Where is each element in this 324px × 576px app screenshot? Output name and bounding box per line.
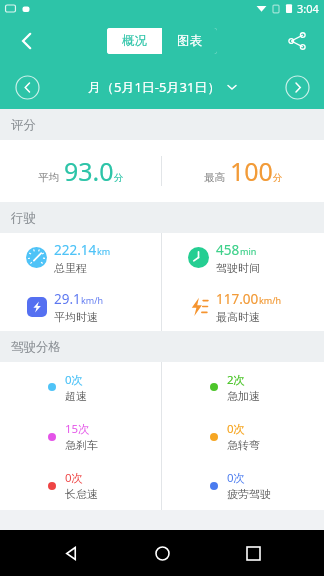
staticText: min: [240, 245, 257, 257]
button[interactable]: Previous: [14, 74, 40, 100]
button[interactable]: Next: [284, 74, 310, 100]
button[interactable]: 15次: [0, 412, 161, 461]
staticText: 3:04: [297, 1, 319, 16]
staticText: 分: [114, 172, 124, 184]
button[interactable]: 0次: [0, 461, 161, 510]
button[interactable]: 2次: [162, 362, 324, 412]
staticText: 117.00: [216, 290, 259, 308]
button[interactable]: 月（5月1日-5月31日）: [88, 78, 237, 96]
staticText: 平均: [38, 171, 59, 184]
staticText: 15次: [65, 421, 90, 437]
staticText: km/h: [81, 294, 104, 306]
staticText: 驾驶时间: [216, 261, 260, 275]
staticText: 超速: [65, 389, 87, 403]
staticText: 222.14: [54, 241, 97, 259]
staticText: 长怠速: [65, 487, 98, 501]
button[interactable]: 458: [162, 233, 324, 282]
button[interactable]: Recents: [233, 533, 273, 573]
button[interactable]: 0次: [162, 461, 324, 510]
staticText: 平均时速: [54, 310, 98, 324]
button[interactable]: Share: [278, 22, 316, 60]
staticText: 29.1: [54, 290, 81, 308]
button[interactable]: 222.14: [0, 233, 161, 282]
button[interactable]: Back: [51, 533, 91, 573]
button[interactable]: 117.00: [162, 282, 324, 331]
staticText: 0次: [227, 421, 246, 437]
staticText: 评分: [11, 117, 36, 133]
button[interactable]: 29.1: [0, 282, 161, 331]
button[interactable]: 概况: [107, 28, 162, 54]
staticText: km/h: [259, 294, 282, 306]
staticText: 疲劳驾驶: [227, 487, 271, 501]
staticText: 最高: [204, 171, 225, 184]
staticText: 月（5月1日-5月31日）: [88, 78, 221, 96]
staticText: 急加速: [227, 389, 260, 403]
staticText: 100: [230, 154, 273, 188]
staticText: 驾驶分格: [11, 339, 61, 355]
staticText: 0次: [65, 372, 84, 388]
staticText: 2次: [227, 372, 246, 388]
staticText: 458: [216, 241, 240, 259]
staticText: 0次: [65, 470, 84, 486]
staticText: 急转弯: [227, 438, 260, 452]
staticText: 急刹车: [65, 438, 98, 452]
staticText: 概况: [122, 33, 147, 49]
staticText: 0次: [227, 470, 246, 486]
button[interactable]: Home: [142, 533, 182, 573]
button[interactable]: 0次: [162, 412, 324, 461]
staticText: 最高时速: [216, 310, 260, 324]
button[interactable]: 0次: [0, 362, 161, 412]
staticText: 总里程: [54, 261, 87, 275]
button[interactable]: 图表: [162, 28, 217, 54]
staticText: 图表: [177, 33, 202, 49]
button[interactable]: Back: [8, 22, 46, 60]
staticText: 分: [273, 172, 283, 184]
staticText: km: [97, 245, 111, 257]
staticText: 行驶: [11, 210, 36, 226]
staticText: 93.0: [64, 154, 114, 188]
